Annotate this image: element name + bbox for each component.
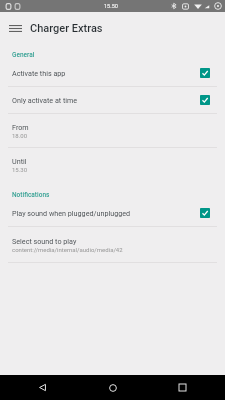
button[interactable]: From (0, 114, 225, 147)
staticText: Only activate at time (12, 96, 200, 104)
staticText: General (12, 51, 35, 59)
staticText: 15.50 (104, 3, 118, 9)
staticText: Play sound when plugged/unplugged (12, 209, 200, 217)
staticText: content://media/internal/audio/media/42 (12, 246, 123, 253)
button[interactable]: Back (30, 375, 55, 400)
staticText: From (12, 123, 29, 131)
button[interactable]: Select sound to play (0, 227, 225, 262)
button[interactable]: Recent apps (170, 375, 195, 400)
button[interactable]: Only activate at time (0, 87, 225, 113)
staticText: Until (12, 157, 27, 165)
staticText: 18.00 (12, 132, 28, 139)
button[interactable]: Open navigation menu (0, 12, 30, 44)
staticText: Select sound to play (12, 237, 77, 245)
button[interactable]: Until (0, 148, 225, 181)
staticText: Notifications (12, 191, 50, 199)
button[interactable]: Play sound when plugged/unplugged (0, 200, 225, 226)
button[interactable]: Activate this app (0, 60, 225, 86)
button[interactable]: Home (100, 375, 125, 400)
staticText: Charger Extras (30, 22, 103, 35)
staticText: Activate this app (12, 69, 200, 77)
staticText: 15.30 (12, 166, 28, 173)
